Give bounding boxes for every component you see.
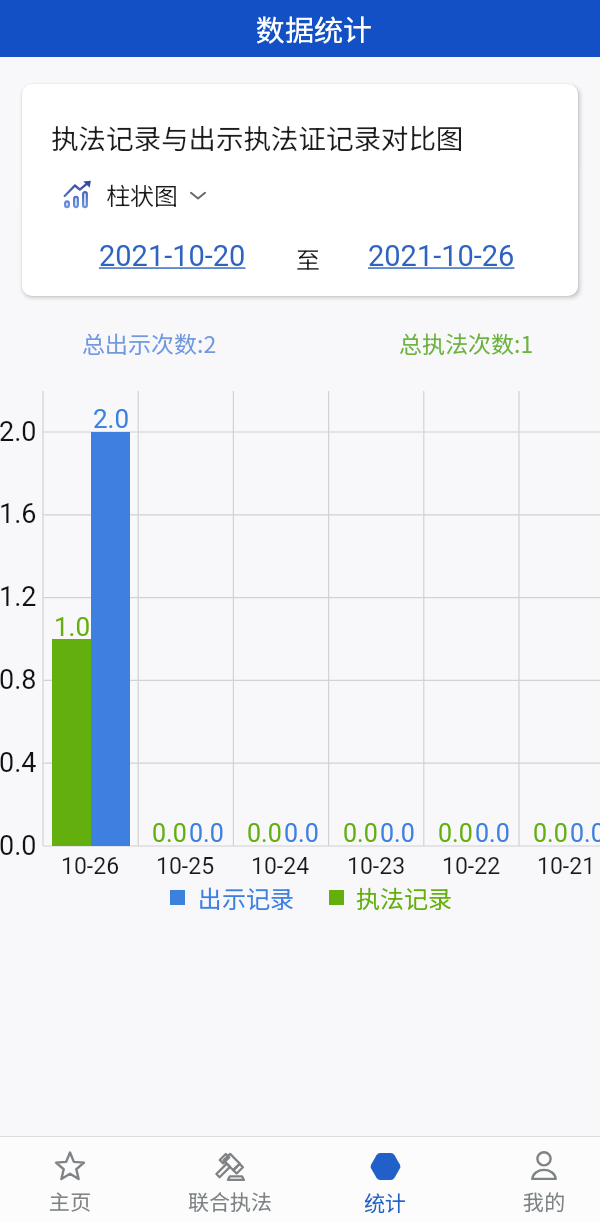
button[interactable]: 柱状图: [63, 177, 206, 212]
staticText: 主页: [49, 1186, 91, 1216]
staticText: 0.4: [0, 747, 37, 779]
button[interactable]: 2021-10-26: [368, 239, 515, 273]
staticText: 0.0: [343, 819, 378, 848]
staticText: 10-22: [442, 853, 501, 880]
button[interactable]: 主页: [0, 1137, 142, 1222]
staticText: 1.6: [0, 498, 37, 530]
other: 联合执法: [215, 1151, 245, 1181]
staticText: 执法记录与出示执法证记录对比图: [51, 117, 464, 157]
staticText: 2.0: [93, 404, 130, 434]
staticText: 总出示次数:2: [82, 326, 217, 359]
staticText: 10-24: [251, 853, 310, 880]
button[interactable]: 2021-10-20: [99, 239, 246, 273]
staticText: 数据统计: [256, 7, 373, 49]
staticText: 10-21: [537, 853, 596, 880]
staticText: 0.0: [0, 830, 37, 862]
staticText: 总执法次数:1: [399, 326, 534, 359]
staticText: 1.0: [54, 612, 91, 642]
staticText: 0.0: [438, 819, 473, 848]
staticText: 10-26: [61, 853, 120, 880]
staticText: 0.0: [475, 819, 510, 848]
staticText: 0.0: [284, 819, 319, 848]
staticText: 执法记录: [356, 880, 452, 915]
staticText: 至: [296, 241, 320, 276]
other: 我的: [529, 1151, 559, 1181]
staticText: 0.0: [247, 819, 282, 848]
staticText: 10-25: [156, 853, 215, 880]
staticText: 2.0: [0, 416, 37, 448]
button[interactable]: 我的: [472, 1137, 600, 1222]
staticText: 0.8: [0, 664, 37, 696]
other: 主页: [55, 1151, 85, 1181]
button[interactable]: 联合执法: [158, 1137, 302, 1222]
staticText: 0.0: [152, 819, 187, 848]
staticText: 0.0: [380, 819, 415, 848]
staticText: 0.0: [570, 819, 600, 848]
staticText: 0.0: [189, 819, 224, 848]
staticText: 10-23: [347, 853, 406, 880]
staticText: 1.2: [0, 581, 37, 613]
button[interactable]: 统计: [313, 1137, 457, 1222]
staticText: 联合执法: [188, 1186, 272, 1216]
staticText: 0.0: [533, 819, 568, 848]
other: 统计: [370, 1151, 401, 1182]
staticText: 统计: [364, 1187, 406, 1217]
staticText: 柱状图: [106, 177, 178, 212]
staticText: 出示记录: [198, 880, 294, 915]
staticText: 我的: [523, 1186, 565, 1216]
